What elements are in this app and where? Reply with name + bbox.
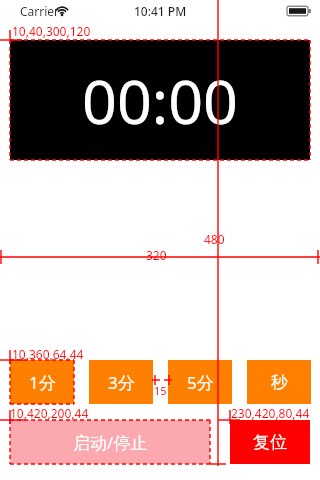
staticText: 10:41 PM	[134, 3, 187, 19]
staticText: 秒	[271, 372, 288, 393]
button[interactable]: 1分	[10, 360, 74, 404]
button[interactable]: 5分	[168, 360, 232, 404]
button[interactable]: 秒	[247, 360, 311, 404]
staticText: 00:00	[82, 59, 238, 142]
staticText: 3分	[108, 371, 135, 394]
staticText: 启动/停止	[73, 431, 148, 454]
staticText: 10,40,300,120	[12, 23, 91, 39]
staticText: 复位	[253, 432, 287, 453]
staticText: 230,420,80,44	[231, 405, 310, 421]
staticText: 1分	[29, 371, 56, 394]
staticText: 10,420,200,44	[10, 405, 89, 421]
button[interactable]: 3分	[89, 360, 153, 404]
staticText: 320	[146, 247, 167, 263]
staticText: 15	[154, 383, 167, 398]
other: Battery full	[287, 5, 311, 17]
staticText: 10,360,64,44	[12, 346, 84, 362]
other: Wi-Fi signal	[55, 4, 69, 17]
staticText: 5分	[187, 371, 214, 394]
staticText: 480	[204, 231, 225, 247]
staticText: Carrier	[20, 3, 60, 19]
button[interactable]: 启动/停止	[10, 420, 210, 464]
button[interactable]: 复位	[230, 420, 310, 464]
